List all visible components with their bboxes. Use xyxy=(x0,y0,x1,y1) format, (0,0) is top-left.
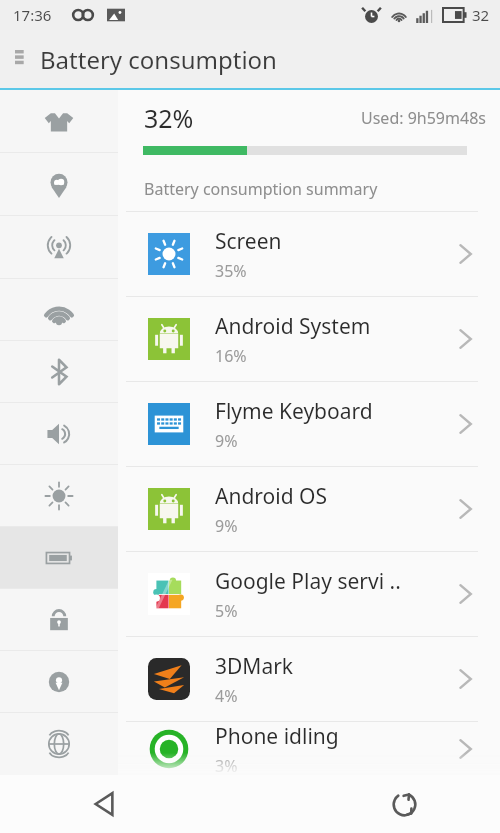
button[interactable]: Mobile network xyxy=(0,216,118,279)
button[interactable]: Android System xyxy=(118,297,500,381)
staticText: Android OS xyxy=(215,482,327,511)
staticText: Battery consumption summary xyxy=(144,178,378,200)
button[interactable]: Weather xyxy=(0,153,118,216)
button[interactable]: 3DMark xyxy=(118,637,500,721)
staticText: Android System xyxy=(215,312,371,341)
staticText: 9% xyxy=(215,430,238,452)
staticText: 35% xyxy=(215,260,247,282)
staticText: 16% xyxy=(215,345,247,367)
button[interactable]: Flyme Keyboard xyxy=(118,382,500,466)
staticText: 32% xyxy=(144,101,194,135)
button[interactable]: Themes xyxy=(0,90,118,153)
staticText: Screen xyxy=(215,227,282,256)
button[interactable]: Back xyxy=(82,782,126,826)
button[interactable]: Phone idling xyxy=(118,722,500,775)
button[interactable]: Battery xyxy=(0,527,118,589)
staticText: Flyme Keyboard xyxy=(215,397,373,426)
staticText: 4% xyxy=(215,685,238,707)
staticText: Phone idling xyxy=(215,722,339,751)
button[interactable]: Sound xyxy=(0,403,118,465)
button[interactable]: Refresh xyxy=(382,782,426,826)
staticText: 9% xyxy=(215,515,238,537)
button[interactable]: Display xyxy=(0,465,118,527)
staticText: Battery consumption xyxy=(40,43,277,76)
button[interactable]: Wi-Fi xyxy=(0,279,118,341)
button[interactable]: Security xyxy=(0,589,118,651)
button[interactable]: Android OS xyxy=(118,467,500,551)
staticText: 5% xyxy=(215,600,238,622)
button[interactable]: Language xyxy=(0,713,118,775)
staticText: 3DMark xyxy=(215,652,294,681)
button[interactable]: Location xyxy=(0,651,118,713)
button[interactable]: Screen xyxy=(118,212,500,296)
button[interactable]: Bluetooth xyxy=(0,341,118,403)
staticText: Google Play servi .. xyxy=(215,567,401,596)
staticText: 17:36 xyxy=(13,5,52,25)
staticText: 3% xyxy=(215,755,238,775)
button[interactable]: Google Play servi .. xyxy=(118,552,500,636)
button[interactable]: Menu xyxy=(6,43,38,75)
staticText: 32 xyxy=(472,5,490,25)
staticText: Used: 9h59m48s xyxy=(361,107,486,129)
